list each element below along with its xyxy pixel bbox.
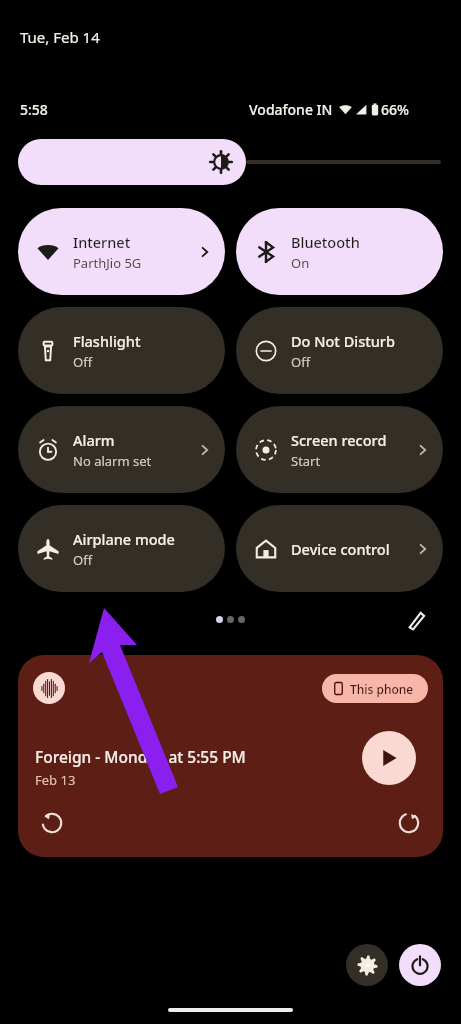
button[interactable]: Do Not Disturb bbox=[236, 307, 443, 394]
staticText: Off bbox=[291, 353, 311, 371]
button[interactable]: Flashlight bbox=[18, 307, 225, 394]
button[interactable]: Internet bbox=[18, 208, 225, 295]
button[interactable]: Edit tiles bbox=[400, 604, 432, 636]
staticText: No alarm set bbox=[73, 452, 152, 470]
button[interactable]: Device control bbox=[236, 505, 443, 592]
staticText: Device control bbox=[291, 539, 416, 559]
staticText: Tue, Feb 14 bbox=[20, 27, 100, 47]
staticText: 66% bbox=[381, 100, 409, 119]
button[interactable]: Power bbox=[399, 944, 441, 986]
button[interactable]: This phone bbox=[18, 655, 443, 857]
button[interactable]: Rewind 5 seconds bbox=[32, 803, 72, 843]
button[interactable]: Brightness bbox=[18, 139, 443, 185]
button[interactable]: Alarm bbox=[18, 406, 225, 493]
staticText: Start bbox=[291, 452, 321, 470]
staticText: Vodafone IN bbox=[249, 100, 333, 119]
staticText: 5:58 bbox=[20, 100, 48, 119]
staticText: On bbox=[291, 254, 310, 272]
button[interactable]: This phone bbox=[322, 674, 428, 703]
button[interactable]: Screen record bbox=[236, 406, 443, 493]
staticText: Feb 13 bbox=[35, 771, 76, 789]
staticText: This phone bbox=[350, 681, 414, 697]
staticText: Off bbox=[73, 551, 93, 569]
staticText: Off bbox=[73, 353, 93, 371]
button[interactable]: Forward 10 seconds bbox=[389, 803, 429, 843]
staticText: Internet bbox=[73, 232, 131, 252]
button[interactable]: Bluetooth bbox=[236, 208, 443, 295]
button[interactable]: Settings bbox=[346, 944, 388, 986]
staticText: Foreign - Monday at 5:55 PM bbox=[35, 746, 246, 767]
staticText: Screen record bbox=[291, 430, 387, 450]
staticText: Do Not Disturb bbox=[291, 331, 395, 351]
staticText: ParthJio 5G bbox=[73, 254, 142, 272]
button[interactable]: Airplane mode bbox=[18, 505, 225, 592]
staticText: Alarm bbox=[73, 430, 115, 450]
staticText: Airplane mode bbox=[73, 529, 175, 549]
button[interactable]: Play bbox=[362, 731, 416, 785]
staticText: Bluetooth bbox=[291, 232, 360, 252]
staticText: Flashlight bbox=[73, 331, 141, 351]
